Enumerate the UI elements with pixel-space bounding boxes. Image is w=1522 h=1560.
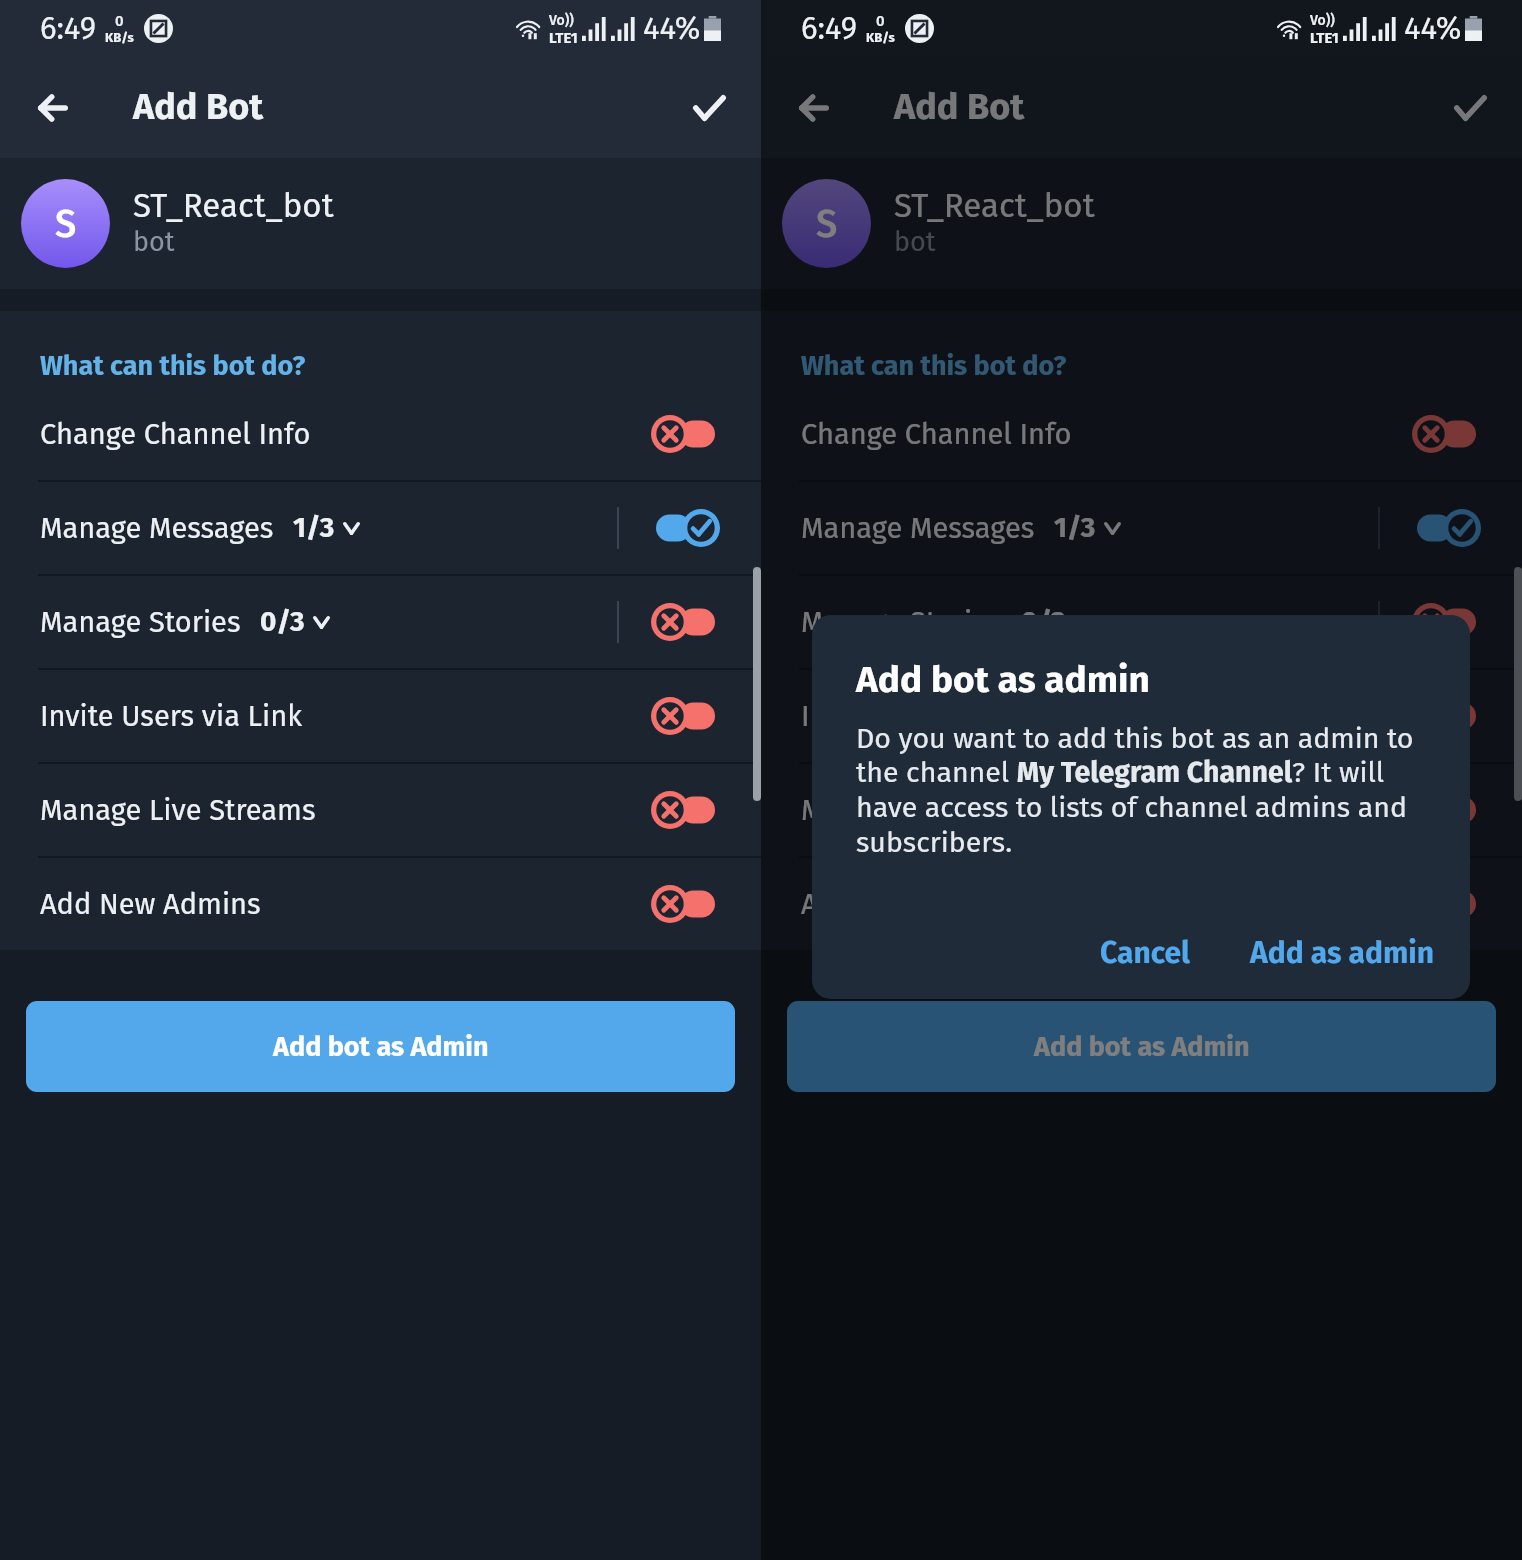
staticText: Invite Users via Link: [40, 699, 303, 734]
staticText: 1/3: [293, 511, 335, 545]
button[interactable]: Cancel: [1086, 923, 1204, 983]
staticText: Do you want to add this bot as an admin …: [856, 721, 1430, 860]
staticText: Manage Live Streams: [801, 793, 1077, 828]
staticText: Add New Admins: [801, 887, 1022, 922]
button[interactable]: Back: [17, 72, 89, 144]
staticText: ST_React_bot: [133, 186, 334, 226]
staticText: 44%: [1404, 10, 1462, 47]
button[interactable]: Dismiss dialog: [761, 57, 1522, 1560]
staticText: Add bot as Admin: [273, 1031, 489, 1063]
button[interactable]: Invite Users via Link: [761, 668, 1522, 762]
staticText: S: [816, 201, 838, 247]
button[interactable]: Add New Admins: [0, 856, 761, 950]
button[interactable]: S: [0, 158, 761, 289]
staticText: Invite Users via Link: [801, 699, 1064, 734]
staticText: KB/s: [105, 30, 134, 46]
staticText: Add New Admins: [40, 887, 261, 922]
staticText: 1/3: [1054, 511, 1096, 545]
staticText: Change Channel Info: [801, 417, 1072, 452]
button[interactable]: Manage Messages: [761, 480, 1522, 574]
staticText: Manage Stories: [801, 605, 1002, 640]
staticText: 0: [115, 12, 124, 30]
staticText: Add bot as Admin: [1034, 1031, 1250, 1063]
button[interactable]: Manage Live Streams: [0, 762, 761, 856]
staticText: LTE1: [1310, 29, 1339, 47]
staticText: KB/s: [866, 30, 895, 46]
staticText: Vo)): [1310, 12, 1335, 29]
staticText: 44%: [643, 10, 701, 47]
button[interactable]: Change Channel Info: [0, 386, 761, 480]
staticText: Manage Messages: [40, 511, 274, 546]
staticText: bot: [133, 226, 175, 258]
staticText: Vo)): [549, 12, 574, 29]
button[interactable]: Manage Stories: [761, 574, 1522, 668]
staticText: 6:49: [40, 10, 96, 47]
staticText: 6:49: [801, 10, 857, 47]
button[interactable]: Done: [1434, 72, 1506, 144]
staticText: Add Bot: [894, 85, 1025, 128]
button[interactable]: Manage Messages: [0, 480, 761, 574]
button[interactable]: Add bot as Admin: [26, 1001, 735, 1092]
staticText: 0/3: [1021, 605, 1066, 639]
button[interactable]: Manage Stories: [0, 574, 761, 668]
button[interactable]: Done: [673, 72, 745, 144]
button[interactable]: Manage Live Streams: [761, 762, 1522, 856]
staticText: Add as admin: [1250, 935, 1435, 971]
button[interactable]: Add New Admins: [761, 856, 1522, 950]
staticText: What can this bot do?: [40, 350, 306, 382]
staticText: Change Channel Info: [40, 417, 311, 452]
button[interactable]: Change Channel Info: [761, 386, 1522, 480]
staticText: bot: [894, 226, 936, 258]
staticText: Manage Live Streams: [40, 793, 316, 828]
button[interactable]: Add bot as Admin: [787, 1001, 1496, 1092]
staticText: 0: [876, 12, 885, 30]
staticText: 0/3: [260, 605, 305, 639]
staticText: Cancel: [1100, 935, 1190, 971]
staticText: Manage Stories: [40, 605, 241, 640]
button[interactable]: Back: [778, 72, 850, 144]
staticText: Add bot as admin: [856, 657, 1150, 701]
staticText: ST_React_bot: [894, 186, 1095, 226]
button[interactable]: Add as admin: [1236, 923, 1449, 983]
staticText: S: [55, 201, 77, 247]
button[interactable]: Invite Users via Link: [0, 668, 761, 762]
staticText: Manage Messages: [801, 511, 1035, 546]
button[interactable]: S: [761, 158, 1522, 289]
staticText: Add Bot: [133, 85, 264, 128]
staticText: What can this bot do?: [801, 350, 1067, 382]
staticText: LTE1: [549, 29, 578, 47]
